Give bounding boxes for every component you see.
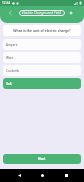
button[interactable]: Home <box>37 170 47 180</box>
button[interactable]: Back <box>6 9 14 17</box>
button[interactable]: Assistant <box>67 9 74 16</box>
button[interactable]: Coulomb <box>3 65 81 76</box>
staticText: Volt <box>6 82 12 86</box>
staticText: Watt <box>6 56 13 60</box>
button[interactable]: Recent apps <box>61 170 71 180</box>
staticText: Coulomb <box>6 69 20 73</box>
staticText: Electric Charges and Field <box>22 11 62 15</box>
button[interactable]: Back <box>14 170 24 180</box>
staticText: 12:34 <box>2 1 11 5</box>
staticText: What is the unit of electric charge? <box>13 28 71 33</box>
button[interactable]: Watt <box>3 52 81 63</box>
staticText: Next <box>38 157 46 161</box>
staticText: Ampere <box>6 43 18 47</box>
button[interactable]: Next <box>3 154 81 164</box>
button[interactable]: Ampere <box>3 39 81 50</box>
button[interactable]: Electric Charges and Field <box>19 10 65 16</box>
button[interactable]: Volt <box>3 78 81 89</box>
